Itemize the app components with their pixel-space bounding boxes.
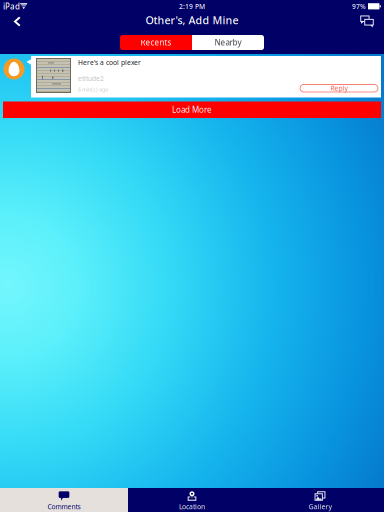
- staticText: etitude2: [78, 74, 104, 83]
- staticText: iPad: [3, 1, 20, 12]
- button[interactable]: Gallery: [256, 488, 384, 512]
- button[interactable]: Messages: [355, 13, 379, 30]
- button[interactable]: Load More: [3, 101, 381, 118]
- staticText: Other's, Add Mine: [145, 13, 238, 27]
- button[interactable]: Reply: [300, 84, 378, 92]
- staticText: Recents: [140, 37, 171, 48]
- staticText: Comments: [47, 502, 80, 511]
- staticText: 97%: [352, 2, 366, 11]
- button[interactable]: Nearby: [192, 35, 264, 50]
- staticText: Here's a cool plexer: [78, 58, 141, 67]
- staticText: Load More: [172, 104, 212, 115]
- staticText: 2:19 PM: [179, 2, 205, 11]
- staticText: Gallery: [308, 502, 331, 511]
- button[interactable]: Recents: [120, 35, 192, 50]
- staticText: Nearby: [214, 37, 241, 48]
- staticText: 6 min(s) ago: [78, 86, 108, 93]
- button[interactable]: Location: [128, 488, 256, 512]
- staticText: Reply: [330, 84, 347, 93]
- button[interactable]: Back: [5, 12, 29, 31]
- staticText: Location: [179, 502, 205, 511]
- button[interactable]: Comments: [0, 488, 128, 512]
